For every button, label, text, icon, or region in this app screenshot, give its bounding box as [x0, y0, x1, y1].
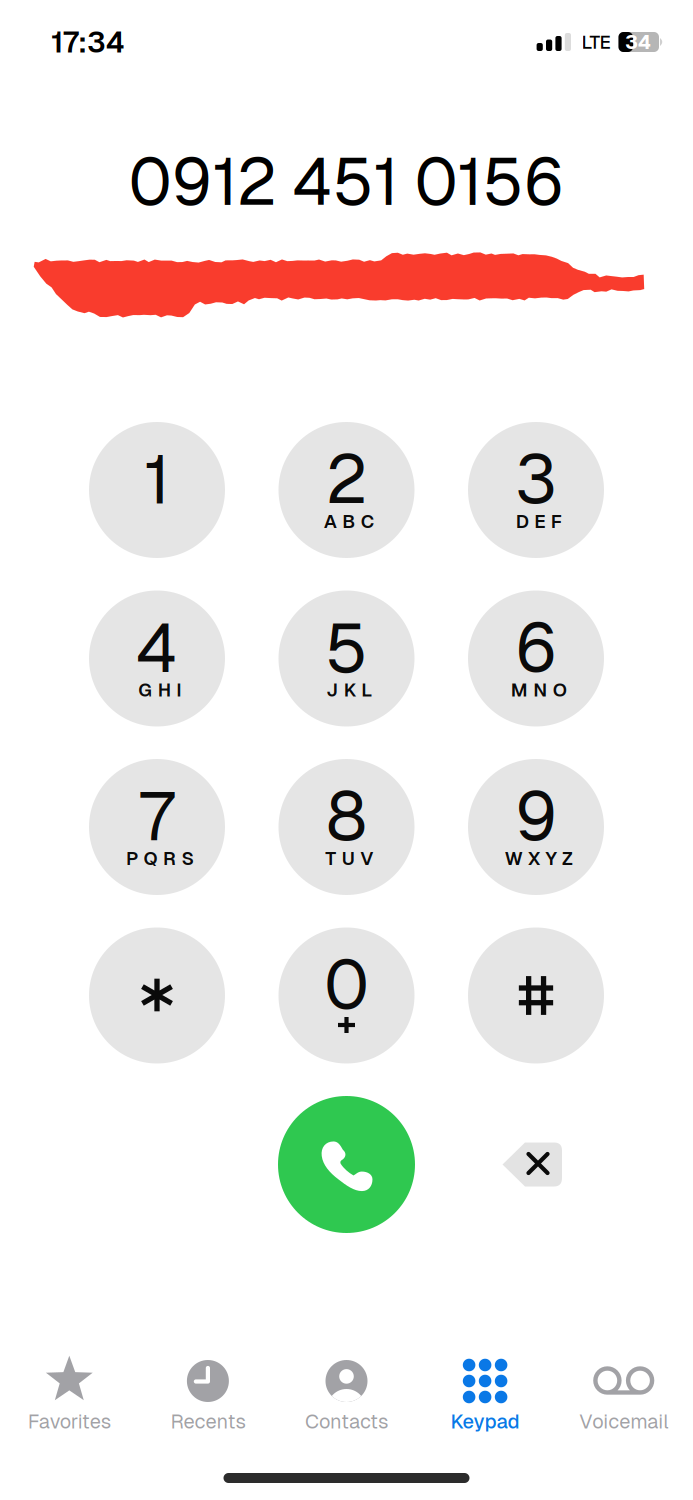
staticText: DEF — [516, 509, 562, 533]
staticText: MNO — [511, 678, 567, 702]
button[interactable]: Recents — [139, 1356, 277, 1432]
button[interactable]: 5 — [278, 590, 414, 726]
button[interactable]: 6 — [468, 590, 604, 726]
button[interactable]: Star — [89, 927, 225, 1063]
button[interactable]: 0 — [278, 927, 414, 1063]
button[interactable]: 3 — [468, 422, 604, 558]
staticText: 0912 451 0156 — [128, 139, 564, 224]
staticText: PQRS — [126, 846, 193, 870]
staticText: 17:34 — [51, 23, 125, 61]
staticText: 5 — [325, 603, 368, 691]
button[interactable]: 2 — [278, 422, 414, 558]
staticText: Contacts — [305, 1408, 388, 1434]
button[interactable]: 7 — [89, 759, 225, 895]
staticText: 7 — [139, 772, 175, 860]
staticText: TUV — [325, 846, 373, 870]
staticText: 4 — [136, 603, 178, 691]
button[interactable]: 4 — [89, 590, 225, 726]
staticText: GHI — [138, 678, 181, 702]
button[interactable]: Keypad — [416, 1356, 554, 1432]
button[interactable]: 8 — [278, 759, 414, 895]
staticText: ABC — [324, 509, 375, 533]
staticText: Recents — [170, 1408, 245, 1434]
button[interactable]: Pound — [468, 927, 604, 1063]
staticText: 34 — [625, 29, 651, 55]
staticText: 2 — [325, 435, 367, 523]
staticText: 6 — [515, 603, 557, 691]
staticText: WXYZ — [504, 846, 573, 870]
button[interactable]: Voicemail — [554, 1356, 693, 1432]
button[interactable]: Favorites — [0, 1356, 139, 1432]
button[interactable]: 1 — [89, 422, 225, 558]
staticText: Favorites — [28, 1408, 111, 1434]
staticText: LTE — [581, 30, 610, 54]
staticText: Voicemail — [579, 1408, 668, 1434]
staticText: JKL — [326, 678, 372, 702]
staticText: 9 — [515, 772, 557, 860]
staticText: 8 — [326, 772, 367, 860]
button[interactable]: Delete — [502, 1142, 562, 1187]
button[interactable]: Call — [278, 1096, 415, 1233]
button[interactable]: Contacts — [277, 1356, 416, 1432]
staticText: 1 — [144, 435, 170, 523]
staticText: 0 — [324, 940, 369, 1028]
staticText: Keypad — [451, 1408, 520, 1434]
staticText: 3 — [515, 435, 557, 523]
button[interactable]: 9 — [468, 759, 604, 895]
